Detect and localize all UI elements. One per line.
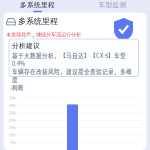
staticText: 20%: [8, 118, 15, 123]
staticText: 10%: [8, 132, 15, 138]
staticText: 分析建议: [12, 42, 40, 50]
staticText: 多系统里程: [20, 1, 55, 9]
staticText: 车型监测: [98, 1, 126, 9]
staticText: 30%: [8, 95, 15, 101]
button[interactable]: 车型监测: [75, 1, 150, 12]
staticText: 占比: [10, 86, 18, 91]
button[interactable]: 多系统里程: [0, 1, 75, 12]
staticText: 多系统里程: [18, 16, 58, 26]
staticText: 15%: [8, 125, 15, 130]
staticText: 25%: [8, 110, 15, 115]
staticText: 5%: [10, 140, 15, 145]
staticText: 30%: [8, 103, 15, 108]
staticText: 未发现异常，继续分车流运行分析: [6, 31, 81, 38]
staticText: 基于大数据分析，【马自达】【CX-5】车型0.4% 车辆存在改装风险，建议提全查…: [12, 51, 132, 91]
